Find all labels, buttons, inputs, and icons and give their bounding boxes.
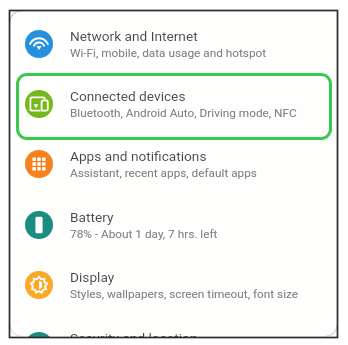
staticText: Security and location <box>70 330 198 337</box>
button[interactable]: Apps and notifications icon <box>11 134 336 194</box>
other: Network and Internet icon <box>25 30 53 58</box>
staticText: Network and Internet <box>70 28 198 44</box>
other: Connected devices icon <box>25 90 53 118</box>
other: Security and location icon <box>25 332 53 337</box>
staticText: Bluetooth, Android Auto, Driving mode, N… <box>70 106 297 120</box>
other: Display icon <box>25 271 53 299</box>
staticText: Battery <box>70 209 114 225</box>
staticText: Wi-Fi, mobile, data usage and hotspot <box>70 46 267 60</box>
button[interactable]: Display icon <box>11 255 336 315</box>
staticText: Assistant, recent apps, default apps <box>70 166 257 180</box>
staticText: 78% - About 1 day, 7 hrs. left <box>70 227 218 241</box>
other: Apps and notifications icon <box>25 150 53 178</box>
button[interactable]: Security and location icon <box>11 316 336 337</box>
staticText: Apps and notifications <box>70 148 207 164</box>
button[interactable]: Battery icon <box>11 195 336 255</box>
staticText: Styles, wallpapers, screen timeout, font… <box>70 287 299 301</box>
staticText: Display <box>70 269 115 285</box>
button[interactable]: Network and Internet icon <box>11 14 336 74</box>
button[interactable]: Connected devices icon <box>11 74 336 134</box>
staticText: Connected devices <box>70 88 186 104</box>
other: Battery icon <box>25 211 53 239</box>
